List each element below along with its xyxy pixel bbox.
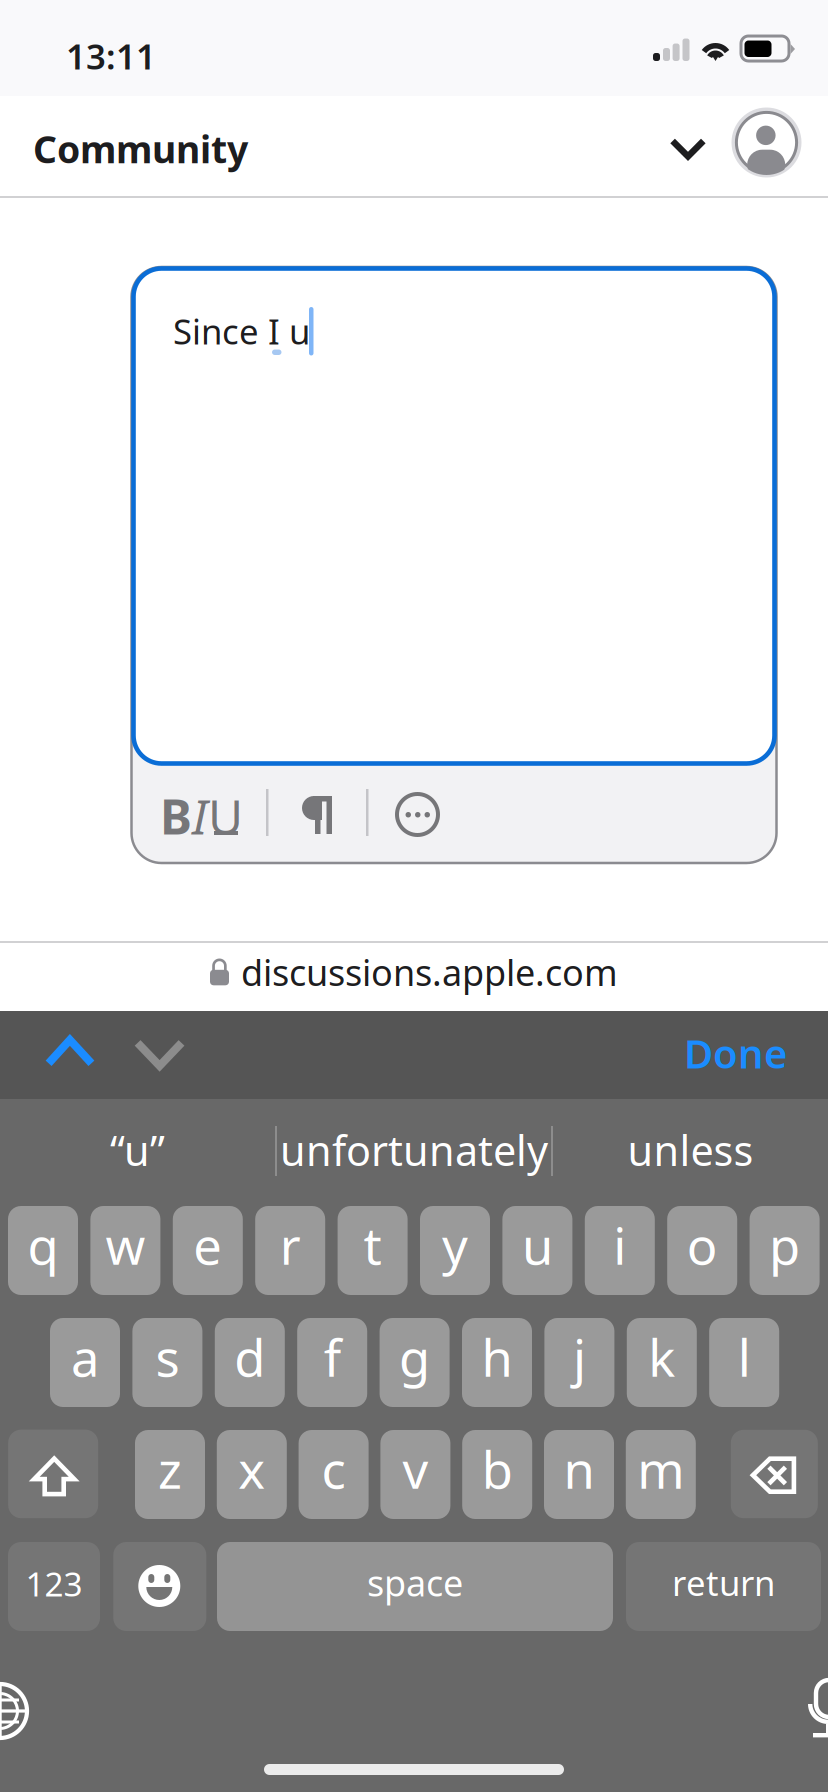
staticText: a (71, 1323, 99, 1391)
button[interactable]: c (299, 1430, 369, 1519)
button[interactable]: e (173, 1206, 243, 1295)
button[interactable]: Shift (8, 1430, 98, 1518)
button[interactable]: n (544, 1430, 614, 1519)
button[interactable]: “u” (0, 0, 828, 1792)
staticText: w (105, 1211, 145, 1279)
button[interactable]: r (255, 1206, 325, 1295)
staticText: Since I u (173, 308, 310, 354)
button[interactable]: d (215, 1318, 285, 1407)
staticText: l (738, 1323, 751, 1391)
staticText: s (155, 1323, 179, 1391)
button[interactable]: Next keyboard (0, 0, 828, 1792)
staticText: o (687, 1211, 718, 1279)
staticText: m (637, 1435, 684, 1503)
staticText: q (27, 1211, 58, 1279)
staticText: unfortunately (280, 1123, 548, 1177)
button[interactable]: Delete (731, 1430, 818, 1518)
button[interactable]: unfortunately (0, 0, 828, 1792)
staticText: y (442, 1211, 468, 1279)
button[interactable]: k (627, 1318, 697, 1407)
button[interactable]: More options (0, 0, 828, 1792)
button[interactable]: unless (0, 0, 828, 1792)
button[interactable]: y (420, 1206, 490, 1295)
staticText: u (522, 1211, 553, 1279)
staticText: 13:11 (66, 33, 156, 79)
button[interactable]: space (217, 1542, 613, 1631)
button[interactable]: Dictate (0, 0, 828, 1792)
staticText: r (280, 1211, 301, 1279)
staticText: t (364, 1211, 382, 1279)
button[interactable]: j (544, 1318, 614, 1407)
button[interactable]: v (380, 1430, 450, 1519)
staticText: j (573, 1323, 586, 1391)
button[interactable]: s (132, 1318, 202, 1407)
button[interactable]: i (585, 1206, 655, 1295)
staticText: b (482, 1435, 513, 1503)
button[interactable]: l (709, 1318, 779, 1407)
staticText: d (234, 1323, 265, 1391)
button[interactable]: Show more (0, 0, 828, 1792)
staticText: B (160, 784, 192, 848)
button[interactable]: w (90, 1206, 160, 1295)
button[interactable]: f (297, 1318, 367, 1407)
staticText: i (613, 1211, 626, 1279)
staticText: f (324, 1323, 341, 1391)
button[interactable]: x (217, 1430, 287, 1519)
staticText: v (402, 1435, 428, 1503)
button[interactable]: Previous field (0, 0, 828, 1792)
button[interactable]: z (135, 1430, 205, 1519)
button[interactable]: u (502, 1206, 572, 1295)
button[interactable]: p (750, 1206, 820, 1295)
staticText: g (399, 1323, 430, 1391)
button[interactable]: return (626, 1542, 821, 1631)
button[interactable]: b (462, 1430, 532, 1519)
button[interactable]: Done (0, 0, 828, 1792)
button[interactable]: t (338, 1206, 408, 1295)
button[interactable]: Next field (0, 0, 828, 1792)
button[interactable]: o (667, 1206, 737, 1295)
button[interactable]: q (8, 1206, 78, 1295)
button[interactable]: m (626, 1430, 696, 1519)
staticText: p (769, 1211, 800, 1279)
button[interactable]: 123 (8, 1542, 100, 1631)
button[interactable]: g (380, 1318, 450, 1407)
staticText: x (238, 1435, 265, 1503)
staticText: n (563, 1435, 594, 1503)
staticText: k (648, 1323, 675, 1391)
staticText: z (158, 1435, 182, 1503)
staticText: Done (684, 1026, 787, 1079)
staticText: “u” (110, 1123, 165, 1177)
staticText: Community (33, 124, 248, 174)
staticText: e (193, 1211, 222, 1279)
staticText: U (208, 784, 243, 848)
staticText: unless (627, 1123, 753, 1177)
button[interactable]: a (50, 1318, 120, 1407)
staticText: 123 (25, 1561, 82, 1606)
staticText: space (367, 1559, 463, 1606)
button[interactable]: h (462, 1318, 532, 1407)
button[interactable]: Paragraph style (0, 0, 828, 1792)
button[interactable]: Emoji (113, 1542, 206, 1631)
button[interactable]: Bold, italic, underline (0, 0, 828, 1792)
staticText: discussions.apple.com (241, 948, 618, 996)
button[interactable]: Account (0, 0, 828, 1792)
staticText: h (481, 1323, 512, 1391)
staticText: I (192, 784, 208, 848)
staticText: c (322, 1435, 346, 1503)
staticText: return (672, 1559, 775, 1605)
